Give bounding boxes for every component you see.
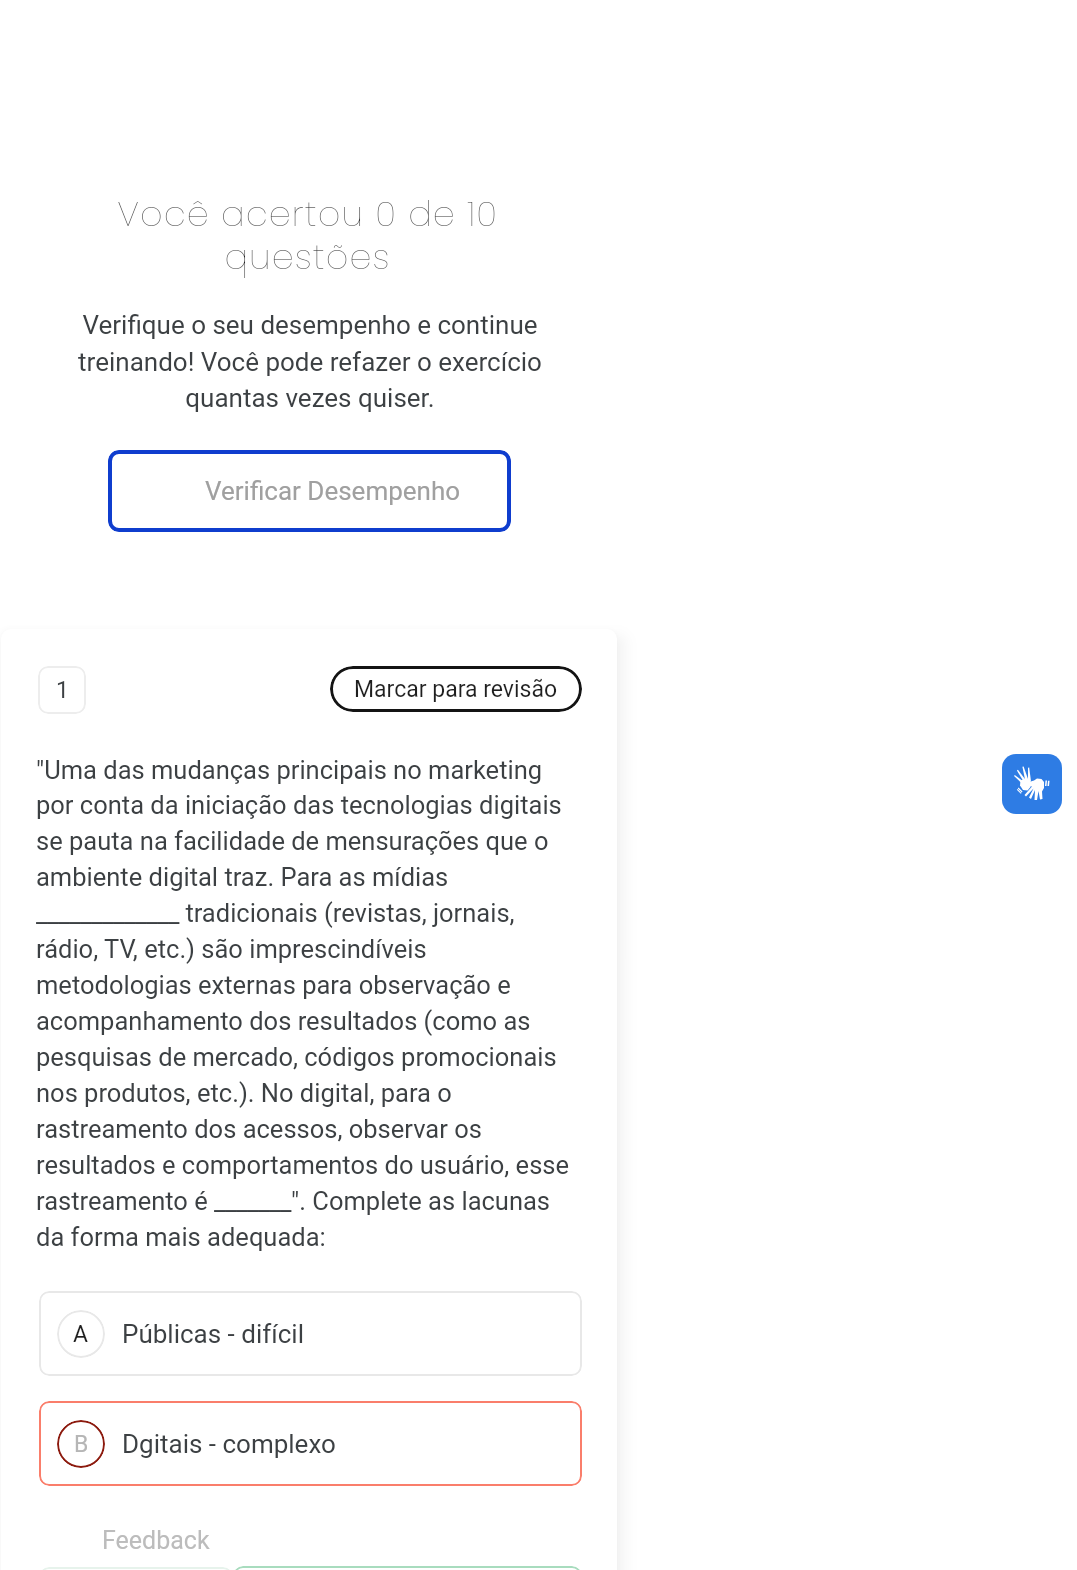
button[interactable]: A [39,1291,582,1376]
staticText: "Uma das mudanças principais no marketin… [36,755,581,1253]
button[interactable]: B [39,1401,582,1486]
staticText: Feedback [102,1526,210,1555]
staticText: Dgitais - complexo [122,1429,336,1459]
staticText: Verifique o seu desempenho e continue tr… [74,310,546,413]
staticText: B [74,1431,89,1458]
button[interactable]: Marcar para revisão [330,666,582,712]
button[interactable]: VLibras acessibilidade [1002,754,1062,814]
staticText: Verificar Desempenho [205,476,461,506]
staticText: A [73,1321,89,1348]
staticText: Você acertou 0 de 10 questões [110,189,505,281]
staticText: Públicas - difícil [122,1319,304,1349]
staticText: Marcar para revisão [354,676,558,703]
button[interactable]: Verificar Desempenho [108,450,511,532]
staticText: 1 [56,677,69,704]
